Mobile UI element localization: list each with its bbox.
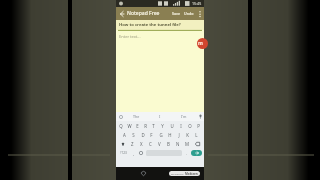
staticText: Save: [172, 11, 180, 16]
staticText: E: [136, 123, 139, 129]
staticText: D: [141, 132, 145, 138]
staticText: S: [132, 132, 135, 138]
button[interactable]: W: [125, 121, 133, 130]
button[interactable]: A: [119, 130, 129, 139]
staticText: U: [170, 123, 174, 129]
button[interactable]: V: [155, 139, 164, 148]
button[interactable]: Google search: [116, 112, 125, 121]
staticText: ?123: [120, 151, 127, 155]
staticText: B: [167, 141, 170, 147]
button[interactable]: Enter: [191, 150, 202, 156]
staticText: Recorded by: [171, 173, 184, 176]
staticText: J: [178, 132, 180, 138]
staticText: I: [180, 123, 182, 129]
button[interactable]: M: [182, 139, 191, 148]
button[interactable]: Save: [170, 8, 182, 19]
button[interactable]: K: [183, 130, 192, 139]
staticText: L: [195, 132, 198, 138]
staticText: A: [123, 132, 126, 138]
button[interactable]: S: [129, 130, 138, 139]
button[interactable]: Y: [158, 121, 167, 130]
staticText: Q: [119, 123, 123, 129]
staticText: ,: [133, 151, 135, 156]
button[interactable]: More options: [196, 7, 204, 20]
button[interactable]: R: [141, 121, 149, 130]
button[interactable]: T: [149, 121, 158, 130]
button[interactable]: ,: [130, 149, 137, 157]
staticText: The: [133, 114, 140, 119]
button[interactable]: C: [146, 139, 155, 148]
staticText: Y: [161, 123, 164, 129]
button[interactable]: B: [164, 139, 173, 148]
button[interactable]: E: [133, 121, 141, 130]
staticText: N: [176, 141, 180, 147]
staticText: How to create the tunnel file?: [119, 22, 181, 28]
staticText: Z: [131, 141, 134, 147]
button[interactable]: J: [174, 130, 183, 139]
button[interactable]: O: [185, 121, 194, 130]
staticText: Mobizen: [185, 172, 198, 176]
button[interactable]: L: [192, 130, 201, 139]
button[interactable]: X: [137, 139, 146, 148]
button[interactable]: Z: [128, 139, 137, 148]
button[interactable]: Back: [116, 7, 127, 20]
button[interactable]: The: [125, 112, 148, 121]
button[interactable]: ?123: [117, 149, 130, 157]
button[interactable]: Voice input: [196, 112, 204, 121]
button[interactable]: I'm: [172, 112, 196, 121]
button[interactable]: How to create the tunnel file?: [116, 20, 204, 30]
staticText: G: [159, 132, 163, 138]
staticText: m: [198, 40, 203, 47]
staticText: 15:45: [192, 1, 202, 6]
button[interactable]: Home: [140, 170, 147, 177]
staticText: R: [144, 123, 147, 129]
staticText: V: [158, 141, 161, 147]
staticText: I: [159, 114, 161, 119]
staticText: F: [150, 132, 153, 138]
button[interactable]: Shift: [117, 139, 128, 148]
button[interactable]: Backspace: [191, 139, 203, 148]
button[interactable]: I: [176, 121, 185, 130]
button[interactable]: P: [194, 121, 203, 130]
staticText: T: [152, 123, 155, 129]
staticText: H: [168, 132, 172, 138]
button[interactable]: Emoji: [137, 149, 145, 157]
staticText: O: [188, 123, 192, 129]
button[interactable]: G: [156, 130, 165, 139]
staticText: I'm: [181, 114, 187, 119]
button[interactable]: F: [147, 130, 156, 139]
button[interactable]: I: [148, 112, 172, 121]
button[interactable]: H: [165, 130, 174, 139]
button[interactable]: D: [138, 130, 147, 139]
staticText: K: [186, 132, 189, 138]
button[interactable]: U: [167, 121, 176, 130]
staticText: M: [185, 141, 189, 147]
button[interactable]: .: [183, 149, 190, 157]
staticText: Enter text...: [119, 34, 141, 39]
staticText: .: [186, 151, 188, 156]
button[interactable]: Q: [117, 121, 125, 130]
button[interactable]: N: [173, 139, 182, 148]
button[interactable]: Notepad Free: [127, 10, 160, 17]
staticText: C: [149, 141, 152, 147]
staticText: W: [127, 123, 132, 129]
staticText: Undo: [184, 11, 194, 16]
button[interactable]: Recorder badge: [197, 38, 208, 49]
staticText: P: [197, 123, 200, 129]
button[interactable]: Undo: [182, 8, 196, 19]
staticText: X: [140, 141, 143, 147]
button[interactable]: Enter text...: [116, 34, 204, 112]
